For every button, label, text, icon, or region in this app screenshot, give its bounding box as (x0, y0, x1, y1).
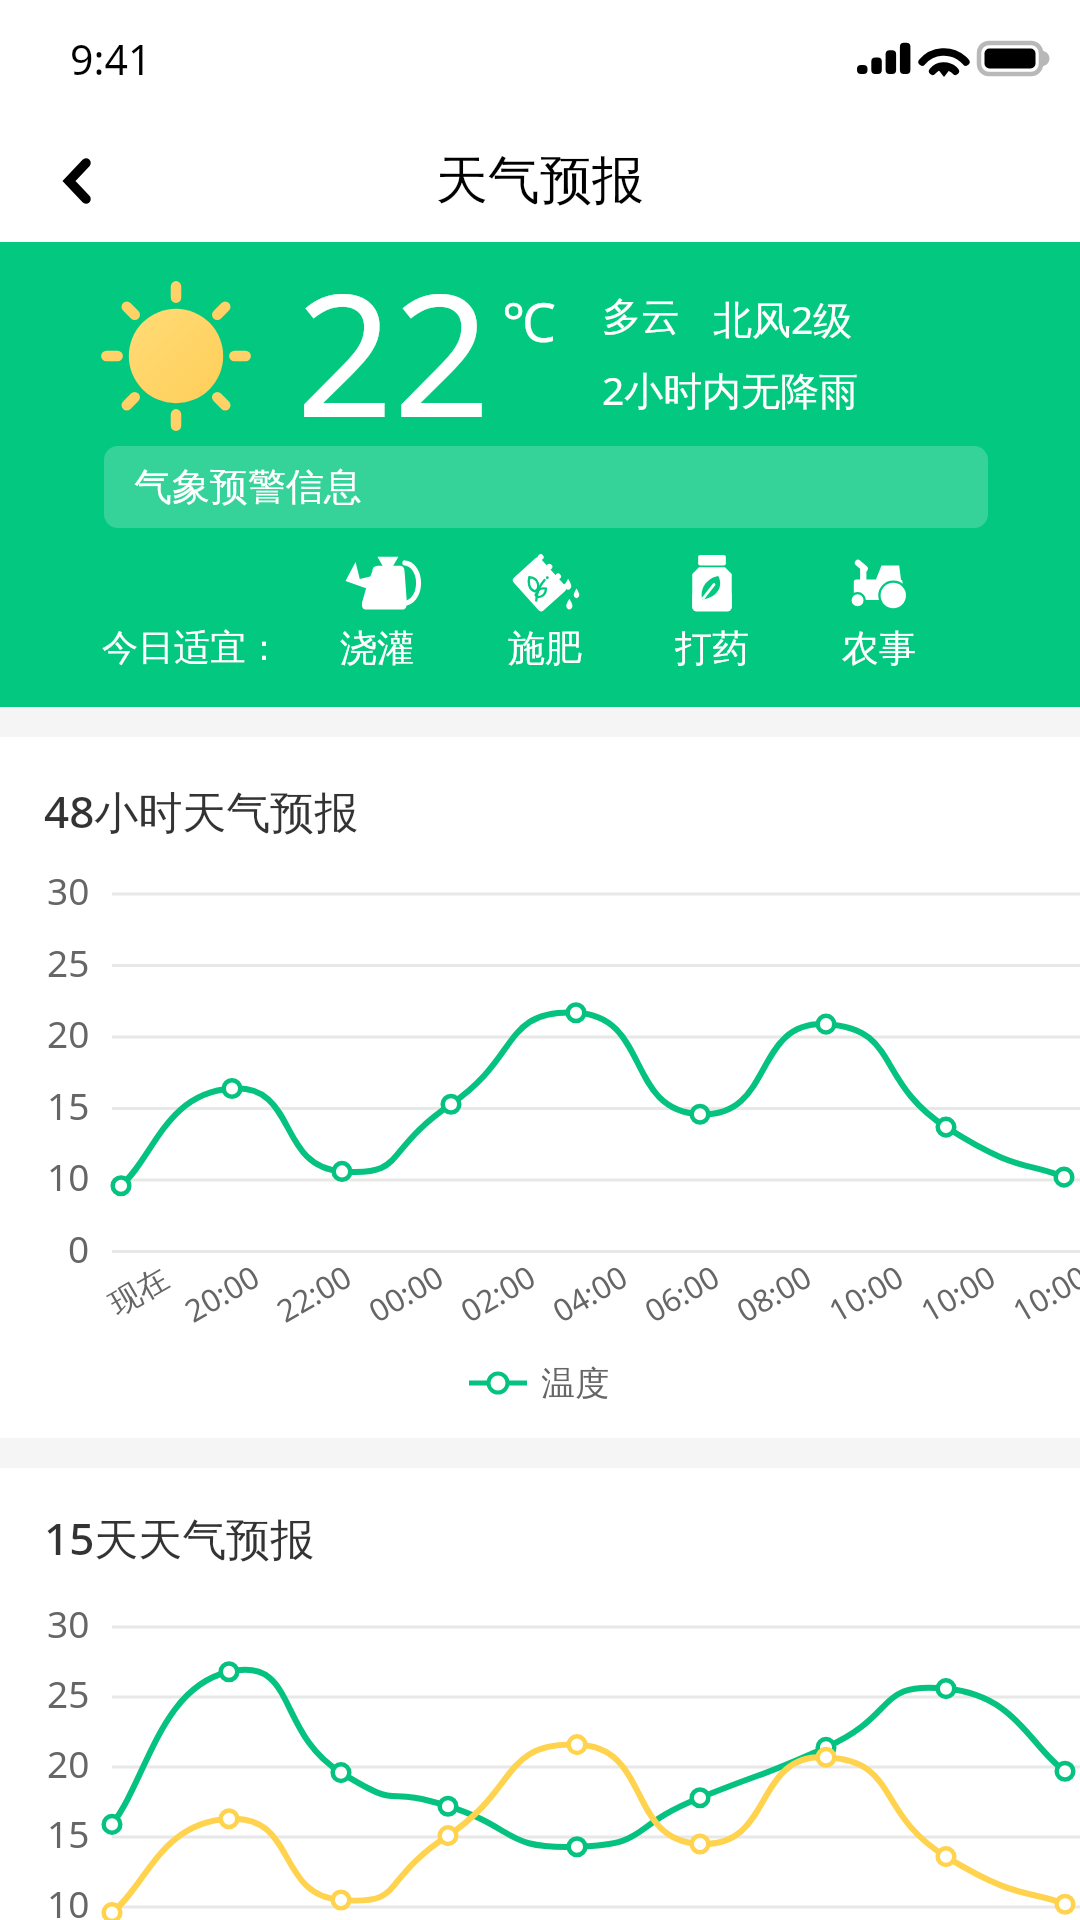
button[interactable]: 浇灌 (293, 542, 461, 672)
staticText: 30 (47, 1598, 90, 1648)
staticText: 10:00 (1005, 1255, 1080, 1331)
staticText: 10 (47, 1151, 90, 1201)
staticText: 22:00 (269, 1255, 359, 1331)
staticText: 浇灌 (340, 625, 414, 672)
staticText: 15天天气预报 (44, 1508, 315, 1568)
staticText: 多云 (602, 292, 680, 341)
staticText: 温度 (541, 1362, 609, 1405)
staticText: 气象预警信息 (134, 463, 362, 511)
staticText: 04:00 (545, 1255, 635, 1331)
staticText: ℃ (502, 284, 556, 358)
staticText: 22 (296, 235, 491, 467)
staticText: 30 (47, 865, 90, 915)
staticText: 北风2级 (713, 292, 853, 345)
staticText: 20 (47, 1738, 90, 1788)
staticText: 15 (47, 1080, 90, 1130)
staticText: 10 (47, 1878, 90, 1920)
button[interactable]: 打药 (628, 542, 796, 672)
button[interactable]: 气象预警信息 (104, 446, 988, 528)
staticText: 20 (47, 1008, 90, 1058)
staticText: 25 (47, 937, 90, 987)
staticText: 00:00 (361, 1255, 451, 1331)
staticText: 08:00 (729, 1255, 819, 1331)
staticText: 2小时内无降雨 (602, 363, 859, 416)
button[interactable]: Back (1, 126, 121, 246)
staticText: 10:00 (913, 1255, 1003, 1331)
staticText: 06:00 (637, 1255, 727, 1331)
staticText: 天气预报 (436, 148, 644, 214)
staticText: 20:00 (177, 1255, 267, 1331)
staticText: 10:00 (821, 1255, 911, 1331)
staticText: 今日适宜： (102, 625, 282, 670)
staticText: 施肥 (508, 625, 582, 672)
staticText: 现在 (102, 1259, 176, 1324)
button[interactable]: 施肥 (461, 542, 629, 672)
staticText: 02:00 (453, 1255, 543, 1331)
staticText: 农事 (842, 625, 916, 672)
button[interactable]: 农事 (795, 542, 963, 672)
staticText: 15 (47, 1808, 90, 1858)
staticText: 0 (68, 1223, 90, 1273)
staticText: 9:41 (70, 31, 152, 87)
staticText: 打药 (675, 625, 749, 672)
staticText: 48小时天气预报 (44, 781, 359, 841)
staticText: 25 (47, 1668, 90, 1718)
